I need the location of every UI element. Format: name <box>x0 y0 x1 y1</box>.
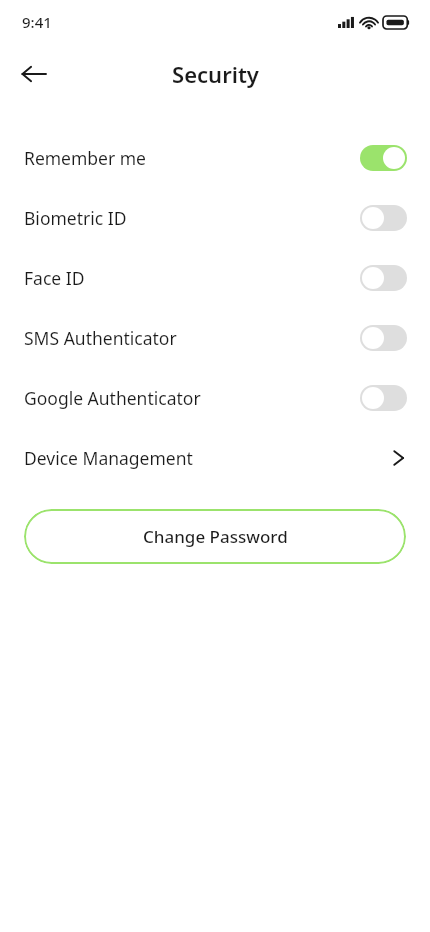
button[interactable]: Remember me <box>0 128 430 188</box>
staticText: Change Password <box>143 525 288 548</box>
staticText: Remember me <box>24 146 360 170</box>
button[interactable]: Biometric ID <box>0 188 430 248</box>
button[interactable]: Google Authenticator <box>0 368 430 428</box>
staticText: Google Authenticator <box>24 386 360 410</box>
button[interactable]: Face ID <box>0 248 430 308</box>
staticText: Device Management <box>24 446 393 470</box>
staticText: Biometric ID <box>24 206 360 230</box>
button[interactable]: Back <box>10 50 58 98</box>
staticText: SMS Authenticator <box>24 326 360 350</box>
button[interactable]: Device Management <box>0 428 430 488</box>
staticText: Face ID <box>24 266 360 290</box>
button[interactable]: Change Password <box>24 509 406 564</box>
staticText: 9:41 <box>22 12 52 32</box>
button[interactable]: SMS Authenticator <box>0 308 430 368</box>
staticText: Security <box>172 59 259 89</box>
